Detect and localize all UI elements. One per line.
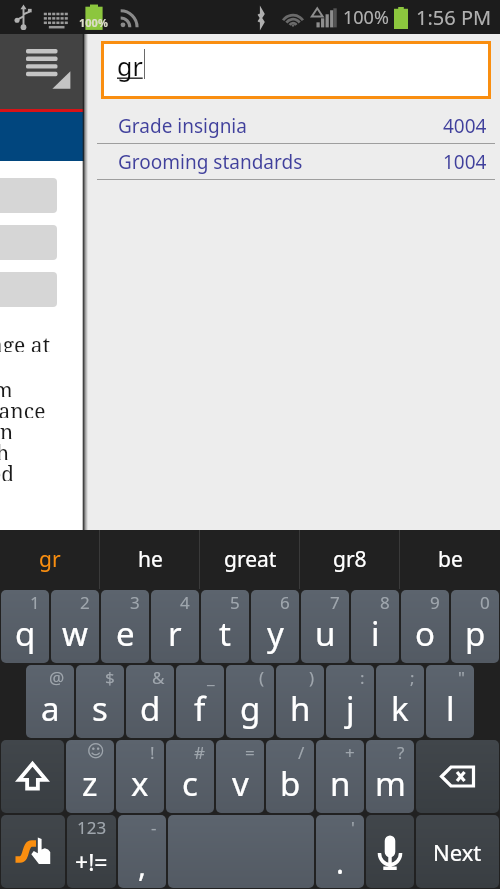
button[interactable]: 9: [401, 590, 449, 663]
staticText: w: [62, 611, 88, 656]
staticText: r: [168, 611, 182, 656]
button[interactable]: he: [100, 530, 200, 589]
staticText: 3: [130, 591, 140, 614]
staticText: +: [345, 741, 355, 764]
staticText: h: [290, 686, 311, 731]
staticText: q: [15, 611, 36, 656]
staticText: Grade insignia: [118, 113, 247, 139]
staticText: .: [336, 842, 345, 883]
button[interactable]: great: [200, 530, 300, 589]
staticText: Next: [433, 837, 482, 867]
button[interactable]: Grade insignia: [84, 108, 500, 144]
staticText: (: [259, 666, 265, 689]
staticText: @: [49, 666, 65, 689]
staticText: 7: [330, 591, 340, 614]
button[interactable]: Grooming standards: [84, 144, 500, 180]
staticText: he: [138, 545, 163, 574]
staticText: h: [0, 439, 10, 460]
staticText: 2: [80, 591, 90, 614]
button[interactable]: 6: [251, 590, 299, 663]
button[interactable]: &: [126, 665, 174, 738]
staticText: 100%: [79, 15, 108, 30]
button[interactable]: 0: [451, 590, 499, 663]
button[interactable]: gr: [104, 44, 488, 96]
button[interactable]: [168, 815, 314, 888]
button[interactable]: gr8: [300, 530, 400, 589]
button[interactable]: 5: [201, 590, 249, 663]
staticText: d: [140, 686, 161, 731]
button[interactable]: _: [176, 665, 224, 738]
button[interactable]: /: [266, 740, 314, 813]
staticText: be: [438, 545, 463, 574]
staticText: in: [0, 418, 14, 439]
button[interactable]: Backspace: [416, 740, 499, 813]
button[interactable]: :: [326, 665, 374, 738]
staticText: o: [415, 611, 435, 656]
staticText: ☺: [87, 741, 105, 761]
button[interactable]: =: [216, 740, 264, 813]
staticText: t: [219, 611, 231, 656]
staticText: !: [150, 741, 155, 764]
staticText: ,: [138, 845, 147, 886]
button[interactable]: 8: [351, 590, 399, 663]
button[interactable]: #: [166, 740, 214, 813]
button[interactable]: 2: [51, 590, 99, 663]
staticText: 123: [77, 816, 107, 839]
button[interactable]: ): [276, 665, 324, 738]
button[interactable]: Voice input: [366, 815, 414, 888]
button[interactable]: 4: [151, 590, 199, 663]
staticText: 9: [430, 591, 440, 614]
staticText: 1:56 PM: [416, 4, 492, 31]
button[interactable]: !: [116, 740, 164, 813]
staticText: ?: [397, 741, 405, 764]
staticText: :: [360, 666, 365, 689]
staticText: z: [82, 761, 98, 806]
staticText: e: [116, 611, 135, 656]
button[interactable]: Next: [416, 815, 499, 888]
staticText: m: [375, 761, 406, 806]
staticText: Grooming standards: [118, 149, 303, 175]
button[interactable]: -: [118, 815, 166, 888]
button[interactable]: $: [76, 665, 124, 738]
button[interactable]: Shift: [1, 740, 64, 813]
staticText: _: [207, 666, 215, 689]
staticText: p: [465, 611, 486, 656]
staticText: i: [371, 611, 380, 656]
staticText: u: [315, 611, 336, 656]
button[interactable]: 1: [1, 590, 49, 663]
staticText: g: [240, 686, 261, 731]
button[interactable]: +: [316, 740, 364, 813]
button[interactable]: ?: [366, 740, 414, 813]
staticText: gr: [117, 49, 143, 83]
staticText: =: [245, 741, 255, 764]
staticText: ): [309, 666, 315, 689]
button[interactable]: 7: [301, 590, 349, 663]
staticText: 100%: [343, 5, 389, 30]
button[interactable]: ": [426, 665, 474, 738]
staticText: j: [346, 686, 355, 731]
staticText: 4: [180, 591, 190, 614]
button[interactable]: be: [400, 530, 500, 589]
staticText: x: [131, 761, 149, 806]
staticText: #: [194, 741, 205, 764]
button[interactable]: @: [26, 665, 74, 738]
staticText: 0: [480, 591, 490, 614]
staticText: n: [330, 761, 351, 806]
button[interactable]: 123: [67, 815, 116, 888]
staticText: great: [224, 545, 277, 574]
button[interactable]: (: [226, 665, 274, 738]
button[interactable]: gr: [0, 530, 100, 589]
staticText: 5: [230, 591, 240, 614]
staticText: s: [92, 686, 108, 731]
staticText: ": [458, 666, 465, 689]
staticText: gr8: [333, 545, 367, 574]
staticText: c: [182, 761, 198, 806]
staticText: rance: [0, 397, 46, 418]
staticText: a: [41, 686, 60, 731]
button[interactable]: ☺: [66, 740, 114, 813]
button[interactable]: ': [316, 815, 364, 888]
button[interactable]: 3: [101, 590, 149, 663]
staticText: v: [232, 761, 249, 806]
button[interactable]: ;: [376, 665, 424, 738]
button[interactable]: Swipe input: [1, 815, 65, 888]
